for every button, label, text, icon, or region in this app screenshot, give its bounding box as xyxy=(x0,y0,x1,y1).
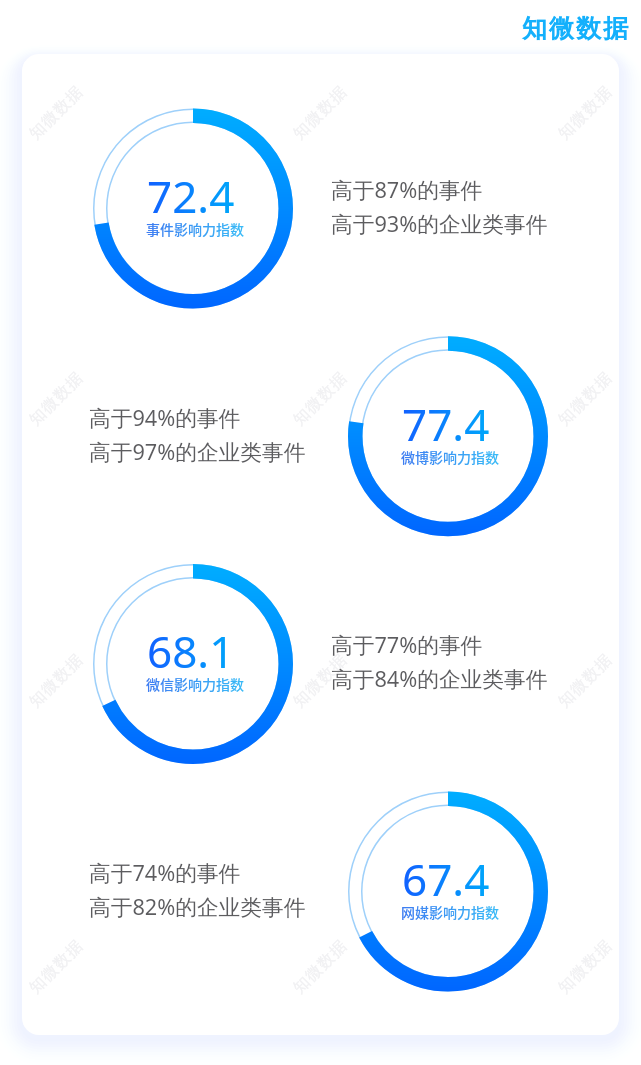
button[interactable]: 高于87%的事件 高于93%的企业类事件 xyxy=(332,179,552,239)
button[interactable]: 高于74%的事件 高于82%的企业类事件 xyxy=(90,862,310,922)
button[interactable]: 高于94%的事件 高于97%的企业类事件 xyxy=(90,406,310,466)
button[interactable]: 网媒影响力指数 67.4 xyxy=(348,792,548,992)
button[interactable]: 事件影响力指数 72.4 xyxy=(93,109,293,309)
button[interactable]: 知微数据 首页 xyxy=(520,12,630,46)
button[interactable]: 高于77%的事件 高于84%的企业类事件 xyxy=(332,634,552,694)
button[interactable]: 微信影响力指数 68.1 xyxy=(93,564,293,764)
button[interactable]: 微博影响力指数 77.4 xyxy=(348,336,548,536)
